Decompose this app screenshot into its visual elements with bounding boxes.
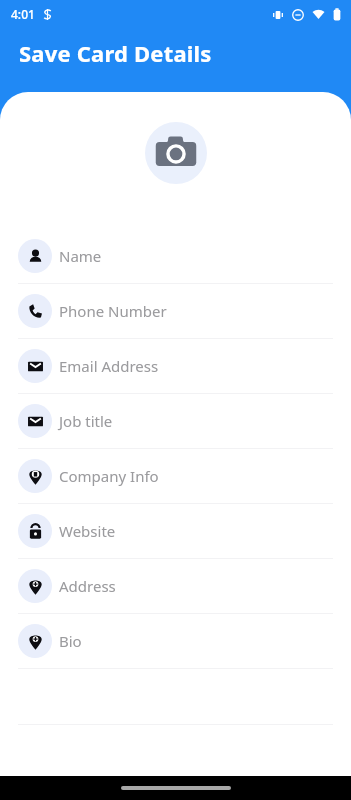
button[interactable]: Change photo xyxy=(145,122,207,184)
staticText: Job title xyxy=(59,411,113,431)
button[interactable]: Address xyxy=(0,559,351,614)
button[interactable]: Phone Number xyxy=(0,284,351,339)
button[interactable]: Email Address xyxy=(0,339,351,394)
staticText: Address xyxy=(59,576,116,596)
staticText: Phone Number xyxy=(59,301,167,321)
staticText: 4:01 xyxy=(11,6,35,22)
button[interactable]: Bio xyxy=(0,614,351,669)
staticText: Name xyxy=(59,246,102,266)
staticText: Website xyxy=(59,521,116,541)
staticText: Bio xyxy=(59,631,82,651)
button[interactable]: Name xyxy=(0,229,351,284)
button[interactable]: Website xyxy=(0,504,351,559)
staticText: Save Card Details xyxy=(19,38,212,68)
staticText: Email Address xyxy=(59,356,159,376)
button[interactable]: Job title xyxy=(0,394,351,449)
button[interactable]: Company Info xyxy=(0,449,351,504)
staticText: Company Info xyxy=(59,466,159,486)
